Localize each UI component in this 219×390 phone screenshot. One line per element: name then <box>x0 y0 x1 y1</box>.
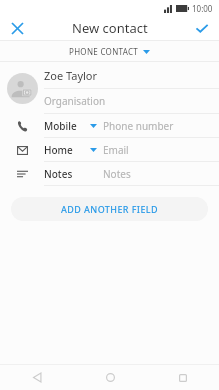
button[interactable]: Close <box>0 16 34 40</box>
button[interactable]: Add photo <box>0 62 44 114</box>
button[interactable]: Organisation <box>44 89 219 113</box>
button[interactable]: Recents <box>163 365 203 390</box>
staticText: Phone number <box>103 119 174 133</box>
button[interactable]: ADD ANOTHER FIELD <box>11 197 208 221</box>
staticText: 10:00 <box>192 3 213 14</box>
staticText: Email <box>103 143 129 157</box>
staticText: Zoe Taylor <box>44 68 98 83</box>
button[interactable]: Notes <box>0 162 219 186</box>
button[interactable]: Phone <box>0 114 219 138</box>
staticText: Mobile <box>44 119 77 133</box>
staticText: Home <box>44 143 73 157</box>
other: Phone <box>17 121 28 132</box>
staticText: New contact <box>72 19 148 37</box>
button[interactable]: Save <box>185 16 219 40</box>
button[interactable]: Home <box>90 365 130 390</box>
other: Notes <box>17 170 28 178</box>
staticText: Organisation <box>44 94 106 108</box>
button[interactable]: Zoe Taylor <box>44 62 219 88</box>
button[interactable]: Email <box>0 138 219 162</box>
other: Email <box>17 146 28 155</box>
staticText: PHONE CONTACT <box>69 46 139 57</box>
staticText: ADD ANOTHER FIELD <box>61 203 159 215</box>
button[interactable]: Back <box>17 365 57 390</box>
staticText: Notes <box>103 167 131 181</box>
button[interactable]: PHONE CONTACT <box>63 44 156 59</box>
staticText: Notes <box>44 167 73 181</box>
